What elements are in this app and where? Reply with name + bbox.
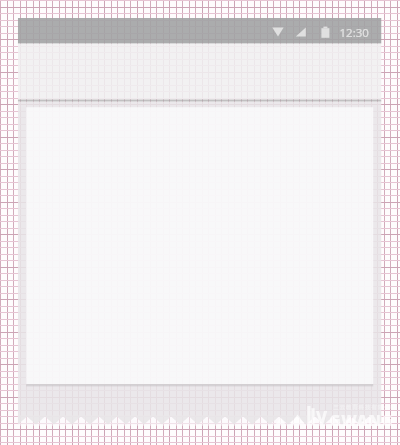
button[interactable]: Android app screenshot on grid paper <box>0 0 400 445</box>
